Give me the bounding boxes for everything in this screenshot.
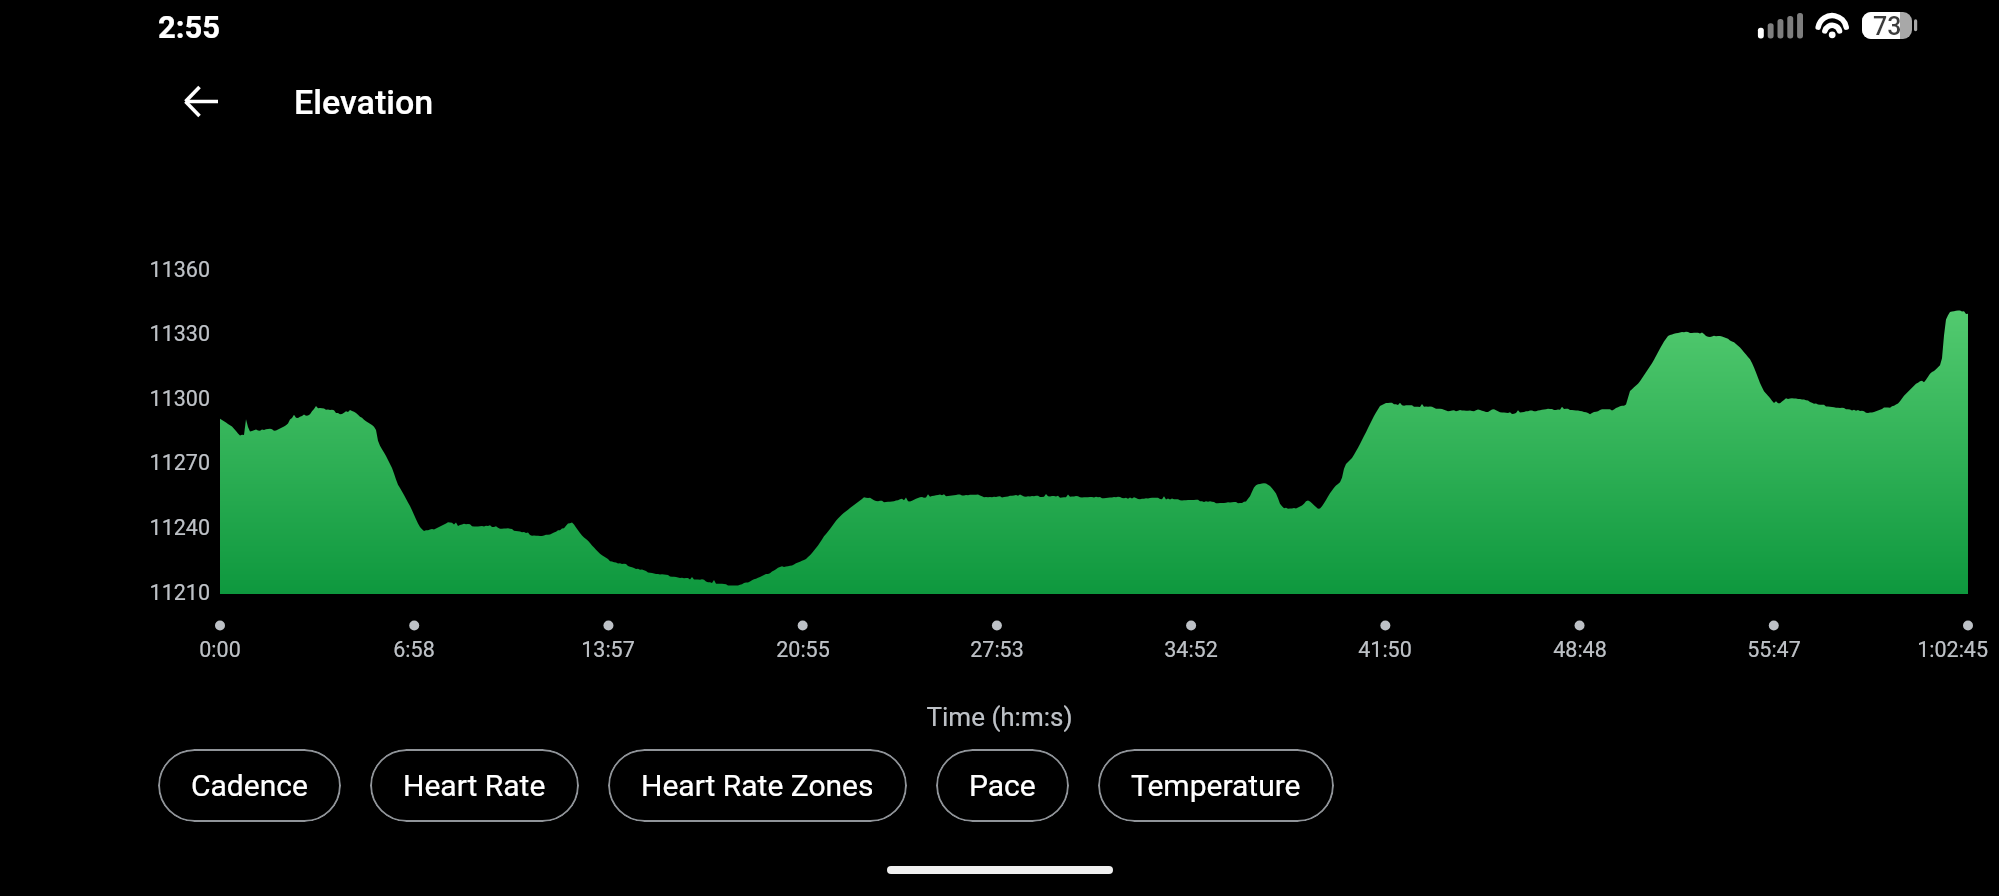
- staticText: 0:00: [120, 637, 320, 662]
- staticText: Pace: [969, 768, 1036, 803]
- staticText: 11210: [90, 580, 210, 605]
- button[interactable]: Heart Rate Zones: [608, 749, 907, 822]
- staticText: 11360: [90, 257, 210, 282]
- button[interactable]: Cadence: [158, 749, 341, 822]
- button[interactable]: Heart Rate: [370, 749, 579, 822]
- staticText: 48:48: [1480, 637, 1680, 662]
- staticText: 34:52: [1091, 637, 1291, 662]
- staticText: Heart Rate: [403, 768, 546, 803]
- staticText: 11300: [90, 386, 210, 411]
- button[interactable]: Pace: [936, 749, 1069, 822]
- staticText: 41:50: [1285, 637, 1485, 662]
- staticText: 11270: [90, 450, 210, 475]
- staticText: Temperature: [1131, 768, 1301, 803]
- staticText: 6:58: [314, 637, 514, 662]
- staticText: 2:55: [158, 9, 221, 45]
- staticText: Cadence: [191, 768, 308, 803]
- staticText: 27:53: [897, 637, 1097, 662]
- staticText: 11240: [90, 515, 210, 540]
- staticText: 13:57: [508, 637, 708, 662]
- staticText: 55:47: [1674, 637, 1874, 662]
- staticText: 1:02:45: [1788, 637, 1988, 662]
- staticText: Elevation: [294, 82, 434, 122]
- staticText: Heart Rate Zones: [641, 768, 874, 803]
- button[interactable]: Back: [169, 69, 233, 133]
- staticText: 73: [1873, 12, 1902, 41]
- button[interactable]: Temperature: [1098, 749, 1334, 822]
- staticText: 11330: [90, 321, 210, 346]
- staticText: 20:55: [703, 637, 903, 662]
- staticText: Time (h:m:s): [0, 702, 1999, 732]
